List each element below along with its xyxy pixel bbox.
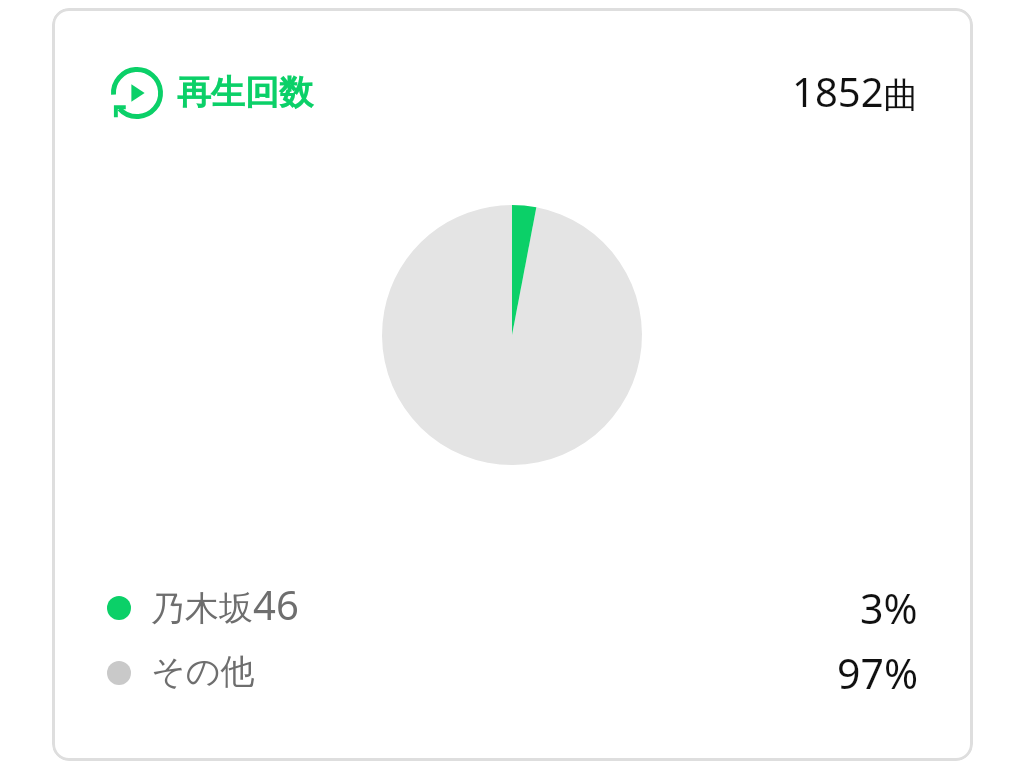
button[interactable]: Play count pie chart — [382, 205, 642, 465]
staticText: 乃木坂46 — [151, 577, 299, 631]
staticText: 1852曲 — [792, 64, 919, 118]
staticText: 3% — [860, 580, 918, 636]
other: Replay play count — [111, 67, 163, 119]
button[interactable]: その他 — [53, 633, 973, 695]
staticText: その他 — [151, 650, 255, 693]
button[interactable]: 乃木坂46 — [53, 568, 973, 630]
staticText: 97% — [837, 645, 918, 701]
staticText: 再生回数 — [177, 71, 313, 114]
button[interactable]: Replay play count — [53, 54, 973, 132]
